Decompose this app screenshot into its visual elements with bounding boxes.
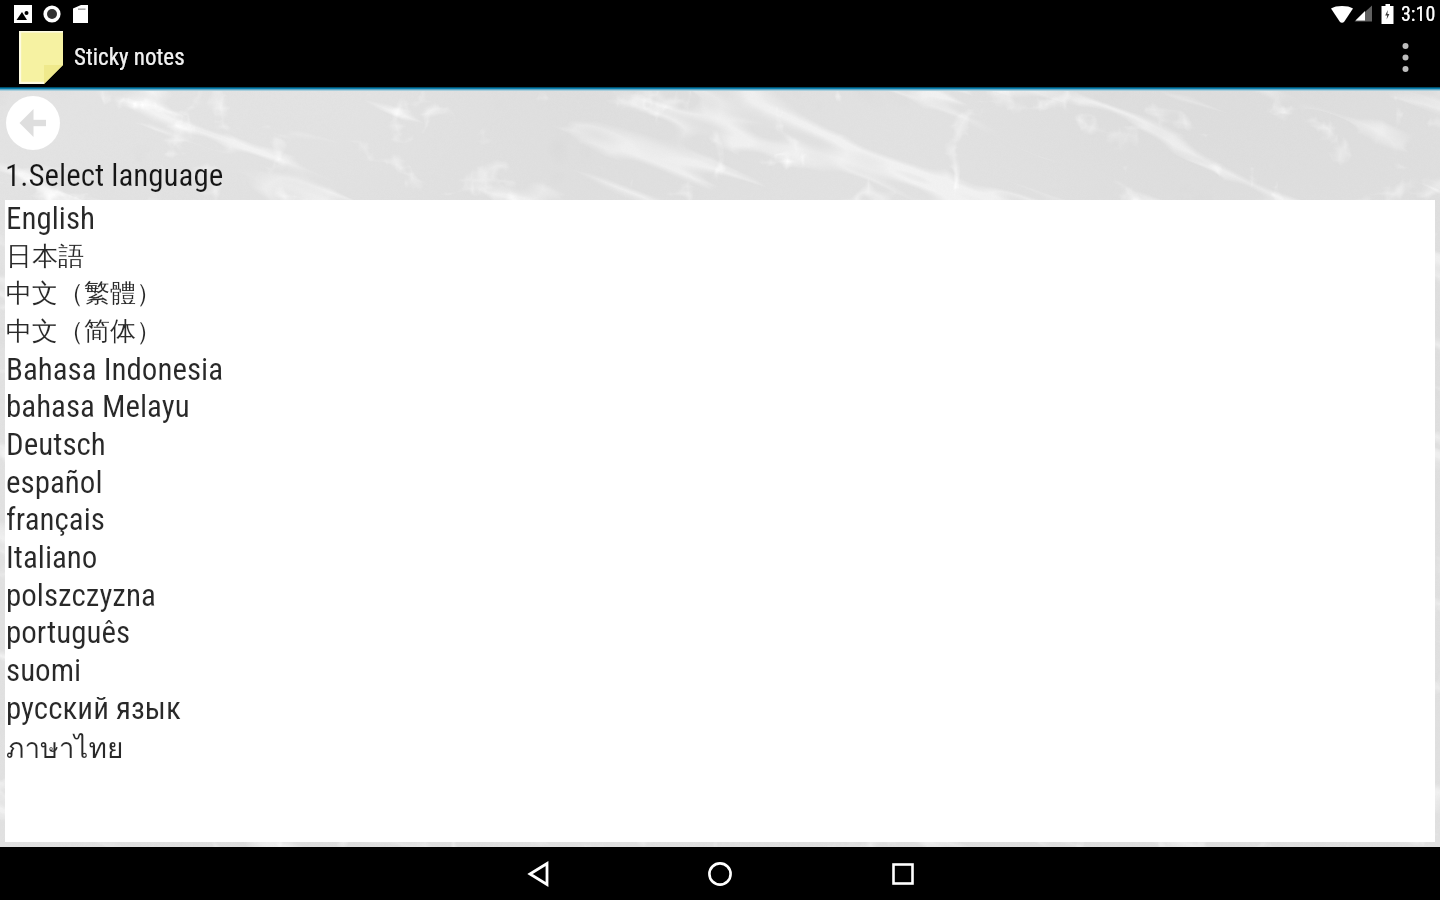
- button[interactable]: français: [5, 500, 1435, 538]
- button[interactable]: English: [5, 199, 1435, 237]
- staticText: 1.Select language: [5, 157, 224, 193]
- staticText: suomi: [6, 652, 82, 688]
- button[interactable]: bahasa Melayu: [5, 387, 1435, 425]
- button[interactable]: 中文（繁體）: [5, 274, 1435, 312]
- staticText: português: [6, 614, 131, 650]
- staticText: français: [6, 501, 105, 537]
- button[interactable]: Recents: [857, 847, 949, 900]
- staticText: ภาษาไทย: [6, 726, 124, 764]
- staticText: 中文（繁體）: [6, 277, 162, 310]
- staticText: Italiano: [6, 539, 98, 575]
- button[interactable]: español: [5, 463, 1435, 501]
- button[interactable]: More options: [1370, 27, 1440, 87]
- staticText: 日本語: [6, 240, 84, 273]
- button[interactable]: Back: [6, 96, 60, 150]
- button[interactable]: Back: [491, 847, 583, 900]
- staticText: bahasa Melayu: [6, 388, 190, 424]
- staticText: 3:10: [1401, 2, 1436, 25]
- button[interactable]: 中文（简体）: [5, 312, 1435, 350]
- button[interactable]: русский язык: [5, 689, 1435, 727]
- button[interactable]: Italiano: [5, 538, 1435, 576]
- staticText: Bahasa Indonesia: [6, 351, 224, 387]
- button[interactable]: Deutsch: [5, 425, 1435, 463]
- button[interactable]: 日本語: [5, 237, 1435, 275]
- button[interactable]: ภาษาไทย: [5, 726, 1435, 764]
- staticText: polszczyzna: [6, 577, 156, 613]
- staticText: español: [6, 464, 103, 500]
- button[interactable]: polszczyzna: [5, 576, 1435, 614]
- staticText: Sticky notes: [74, 44, 185, 71]
- staticText: 中文（简体）: [6, 315, 162, 348]
- staticText: English: [6, 200, 96, 236]
- button[interactable]: Bahasa Indonesia: [5, 350, 1435, 388]
- staticText: Deutsch: [6, 426, 106, 462]
- button[interactable]: suomi: [5, 651, 1435, 689]
- button[interactable]: português: [5, 613, 1435, 651]
- button[interactable]: Home: [674, 847, 766, 900]
- staticText: русский язык: [6, 690, 181, 726]
